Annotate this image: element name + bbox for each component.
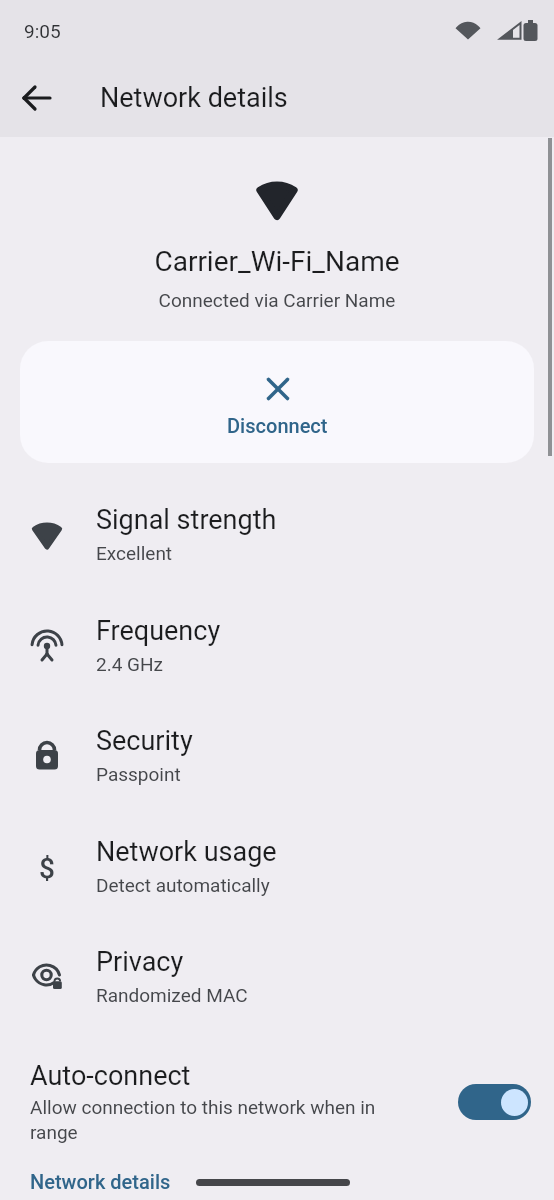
button[interactable] xyxy=(13,74,61,122)
button[interactable]: Frequency xyxy=(0,589,554,699)
button[interactable]: Disconnect xyxy=(20,341,534,463)
staticText: Allow connection to this network when in… xyxy=(30,1096,376,1143)
staticText: Frequency xyxy=(96,615,221,647)
staticText: Network details xyxy=(100,82,288,114)
staticText: 2.4 GHz xyxy=(96,653,164,675)
button[interactable]: Signal strength xyxy=(0,478,554,588)
staticText: $ xyxy=(39,852,55,885)
staticText: Passpoint xyxy=(96,763,181,785)
button[interactable]: Privacy xyxy=(0,920,554,1030)
staticText: Excellent xyxy=(96,542,173,564)
staticText: Auto-connect xyxy=(30,1060,191,1092)
staticText: Signal strength xyxy=(96,504,277,536)
staticText: Detect automatically xyxy=(96,874,270,896)
staticText: Privacy xyxy=(96,946,184,978)
button[interactable]: Network details xyxy=(30,1170,171,1193)
staticText: Connected via Carrier Name xyxy=(0,289,554,311)
button[interactable]: Auto-connect xyxy=(0,1040,554,1160)
staticText: Network usage xyxy=(96,836,277,868)
staticText: 9:05 xyxy=(24,20,61,42)
staticText: Carrier_Wi-Fi_Name xyxy=(0,245,554,278)
staticText: Randomized MAC xyxy=(96,984,248,1006)
button[interactable]: $ xyxy=(0,810,554,920)
staticText: Disconnect xyxy=(227,414,328,437)
button[interactable]: Security xyxy=(0,699,554,809)
staticText: Security xyxy=(96,725,193,757)
